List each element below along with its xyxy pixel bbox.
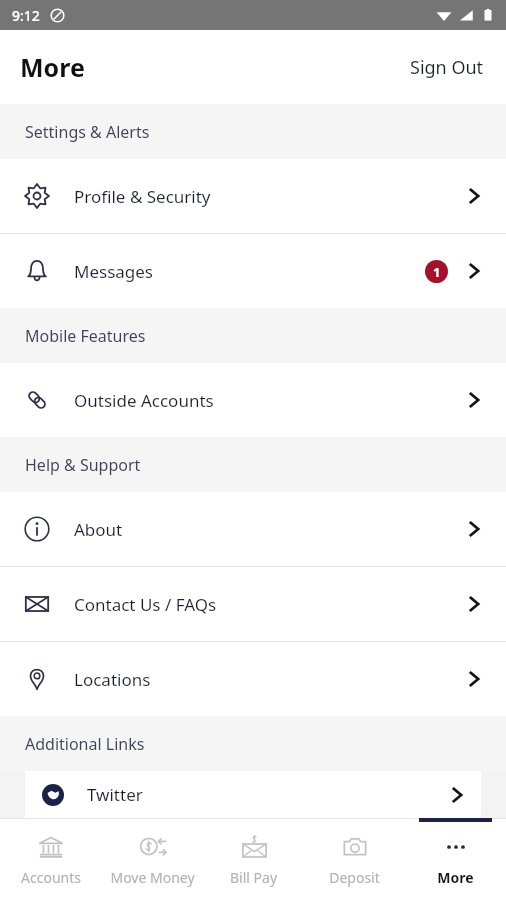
button[interactable]: Profile & Security: [0, 159, 506, 233]
staticText: Additional Links: [25, 733, 145, 755]
staticText: More: [405, 868, 506, 887]
staticText: Sign Out: [410, 55, 484, 80]
staticText: Locations: [74, 668, 151, 691]
staticText: Outside Accounts: [74, 389, 214, 412]
button[interactable]: Accounts: [0, 818, 102, 900]
staticText: Bill Pay: [203, 868, 304, 887]
button[interactable]: Locations: [0, 642, 506, 716]
button[interactable]: Bill Pay: [203, 818, 304, 900]
staticText: Messages: [74, 260, 154, 283]
staticText: 9:12: [12, 6, 40, 25]
staticText: Profile & Security: [74, 185, 211, 208]
button[interactable]: Outside Accounts: [0, 363, 506, 437]
button[interactable]: Messages: [0, 234, 506, 308]
staticText: Contact Us / FAQs: [74, 593, 217, 616]
button[interactable]: Contact Us / FAQs: [0, 567, 506, 641]
staticText: Help & Support: [25, 454, 141, 476]
staticText: Twitter: [87, 783, 143, 806]
staticText: Accounts: [0, 868, 102, 887]
button[interactable]: More: [405, 818, 506, 900]
staticText: Move Money: [102, 868, 203, 887]
staticText: Deposit: [304, 868, 405, 887]
staticText: 1: [433, 263, 441, 281]
button[interactable]: Twitter: [25, 771, 481, 818]
button[interactable]: Deposit: [304, 818, 405, 900]
button[interactable]: Sign Out: [402, 47, 492, 88]
staticText: About: [74, 518, 123, 541]
staticText: Mobile Features: [25, 325, 146, 347]
button[interactable]: Move Money: [102, 818, 203, 900]
staticText: More: [20, 50, 85, 84]
button[interactable]: About: [0, 492, 506, 566]
staticText: Settings & Alerts: [25, 121, 150, 143]
